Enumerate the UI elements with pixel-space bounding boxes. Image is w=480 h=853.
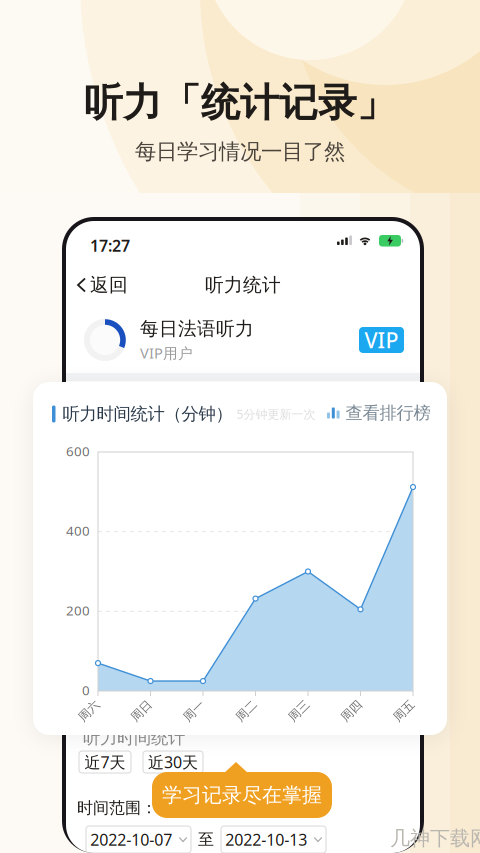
staticText: 600 bbox=[66, 442, 90, 460]
staticText: 周二 bbox=[234, 704, 258, 718]
staticText: 返回 bbox=[90, 273, 128, 296]
staticText: 2022-10-07 bbox=[90, 829, 172, 850]
staticText: 每日法语听力 bbox=[140, 317, 254, 340]
staticText: 5分钟更新一次 bbox=[236, 406, 315, 422]
staticText: 每日学习情况一目了然 bbox=[135, 139, 345, 165]
staticText: 至 bbox=[198, 830, 214, 849]
staticText: 周一 bbox=[182, 704, 206, 718]
button[interactable]: 查看排行榜 bbox=[327, 401, 431, 425]
staticText: 周四 bbox=[339, 704, 363, 718]
staticText: 听力时间统计 bbox=[83, 727, 185, 748]
button[interactable]: 2022-10-07 bbox=[86, 826, 191, 853]
staticText: 0 bbox=[82, 681, 90, 699]
staticText: 近30天 bbox=[148, 751, 198, 773]
staticText: VIP用户 bbox=[140, 343, 193, 363]
button[interactable]: 近30天 bbox=[143, 751, 203, 773]
staticText: 200 bbox=[66, 601, 90, 619]
staticText: 听力统计 bbox=[205, 273, 281, 296]
button[interactable]: 2022-10-13 bbox=[221, 826, 326, 853]
staticText: 周五 bbox=[392, 704, 416, 718]
staticText: 听力「统计记录」 bbox=[84, 79, 396, 127]
staticText: 近7天 bbox=[84, 751, 125, 773]
staticText: 周三 bbox=[287, 704, 311, 718]
staticText: 时间范围： bbox=[77, 798, 157, 818]
button[interactable]: 返回 bbox=[66, 265, 128, 304]
staticText: 周六 bbox=[77, 704, 101, 718]
staticText: 听力时间统计（分钟） bbox=[62, 403, 232, 425]
staticText: 周日 bbox=[129, 704, 153, 718]
staticText: 查看排行榜 bbox=[346, 402, 431, 424]
button[interactable]: 近7天 bbox=[79, 751, 131, 773]
staticText: 几神下载网 bbox=[390, 826, 480, 851]
staticText: 学习记录尽在掌握 bbox=[162, 783, 322, 807]
staticText: 400 bbox=[66, 522, 90, 539]
button[interactable]: VIP bbox=[359, 327, 404, 353]
staticText: 2022-10-13 bbox=[225, 829, 307, 850]
staticText: VIP bbox=[364, 326, 398, 354]
staticText: 17:27 bbox=[90, 235, 130, 256]
